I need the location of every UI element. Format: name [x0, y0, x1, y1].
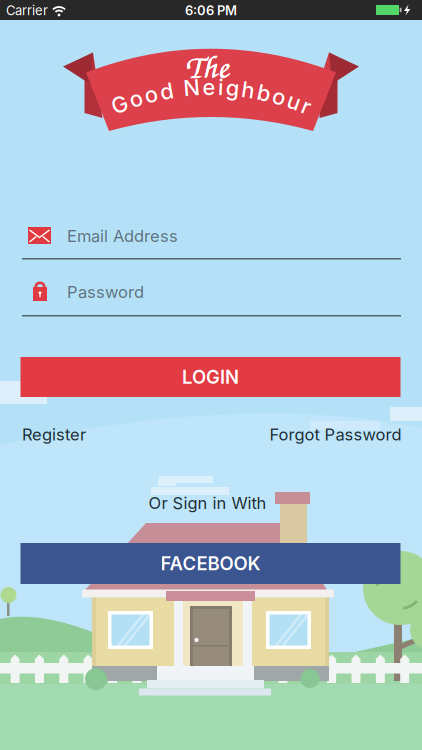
staticText: 6:06 PM — [185, 3, 237, 18]
staticText: G — [111, 91, 127, 118]
staticText: u — [288, 88, 301, 115]
staticText: Password — [67, 282, 144, 302]
staticText: b — [257, 79, 270, 106]
button[interactable]: LOGIN — [20, 357, 400, 397]
staticText: FACEBOOK — [160, 552, 260, 575]
staticText: Or Sign in With — [148, 493, 266, 513]
staticText: The — [185, 44, 228, 88]
staticText: h — [242, 76, 255, 103]
staticText: o — [273, 83, 286, 110]
staticText: r — [302, 93, 310, 119]
button[interactable]: Email Address — [22, 218, 401, 259]
button[interactable]: Forgot Password — [269, 424, 401, 444]
staticText: Forgot Password — [269, 424, 401, 444]
staticText: i — [218, 74, 223, 100]
staticText: LOGIN — [182, 366, 239, 388]
button[interactable]: Register — [22, 424, 86, 444]
staticText: N — [183, 74, 200, 101]
staticText: Email Address — [67, 226, 178, 246]
button[interactable]: FACEBOOK — [20, 543, 400, 584]
staticText: d — [160, 78, 173, 104]
staticText: e — [202, 74, 215, 100]
staticText: o — [129, 85, 142, 112]
staticText: The — [186, 44, 229, 87]
staticText: The — [185, 44, 228, 87]
staticText: Carrier — [6, 3, 48, 18]
button[interactable]: Password — [22, 274, 401, 316]
staticText: g — [226, 75, 239, 101]
staticText: Register — [22, 424, 86, 444]
staticText: o — [144, 81, 157, 108]
